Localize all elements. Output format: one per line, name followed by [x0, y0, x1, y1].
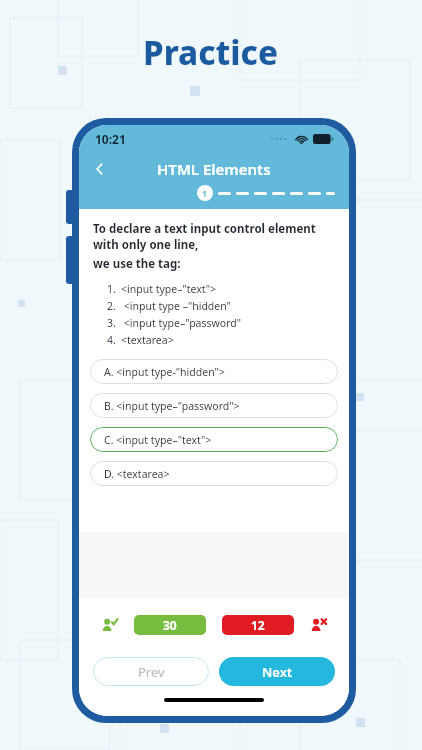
button[interactable]: D. <textarea>	[90, 461, 338, 486]
staticText: Practice	[143, 30, 279, 75]
staticText: To declare a text input control element …	[93, 221, 335, 253]
other: Correct answers	[101, 617, 118, 634]
staticText: A. <input type-"hidden">	[104, 365, 225, 379]
staticText: 1	[202, 187, 208, 199]
staticText: 10:21	[95, 131, 126, 147]
staticText: 1.	[107, 282, 116, 296]
staticText: <input type –"hidden"	[121, 299, 231, 313]
button[interactable]: Back	[85, 155, 115, 183]
staticText: 4.	[107, 333, 116, 347]
button[interactable]: Next	[219, 657, 335, 686]
staticText: 3.	[107, 316, 116, 330]
staticText: <input type–"text">	[121, 282, 217, 296]
staticText: <input type–"password"	[121, 316, 242, 330]
staticText: 30	[163, 617, 177, 633]
staticText: Next	[262, 663, 293, 681]
button[interactable]: A. <input type-"hidden">	[90, 359, 338, 384]
staticText: C. <input type–"text">	[104, 433, 212, 447]
staticText: Prev	[138, 663, 165, 681]
staticText: 2.	[107, 299, 116, 313]
button[interactable]: B. <input type–"password">	[90, 393, 338, 418]
button[interactable]: C. <input type–"text">	[90, 427, 338, 452]
button[interactable]: Prev	[93, 657, 209, 686]
staticText: B. <input type–"password">	[104, 399, 240, 413]
staticText: D. <textarea>	[104, 467, 170, 481]
staticText: we use the tag:	[93, 256, 181, 272]
other: Wrong answers	[310, 617, 327, 634]
staticText: <textarea>	[121, 333, 174, 347]
staticText: HTML Elements	[157, 159, 271, 179]
staticText: 12	[251, 617, 265, 633]
